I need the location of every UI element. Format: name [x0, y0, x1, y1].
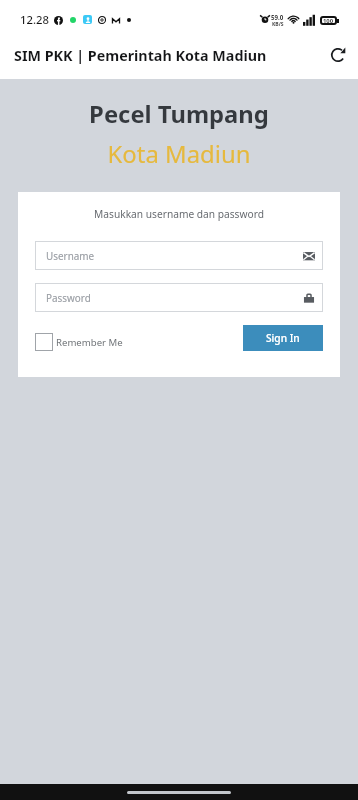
button[interactable]: Refresh	[324, 41, 352, 69]
staticText: KB/S	[272, 21, 284, 28]
staticText: Kota Madiun	[0, 137, 358, 170]
staticText: 59.0	[271, 13, 284, 21]
staticText: Remember Me	[56, 336, 123, 349]
staticText: Masukkan username dan password	[35, 207, 323, 221]
button[interactable]: Username	[35, 241, 323, 270]
button[interactable]: Password	[35, 283, 323, 312]
button[interactable]: Remember Me	[35, 333, 123, 351]
staticText: Pecel Tumpang	[0, 98, 358, 130]
staticText: SIM PKK | Pemerintah Kota Madiun	[14, 46, 267, 65]
button[interactable]: Sign In	[243, 325, 323, 351]
staticText: 100	[323, 17, 334, 25]
staticText: Password	[46, 291, 91, 304]
staticText: Username	[46, 249, 95, 262]
staticText: 12.28	[20, 12, 49, 27]
staticText: Sign In	[266, 331, 300, 345]
